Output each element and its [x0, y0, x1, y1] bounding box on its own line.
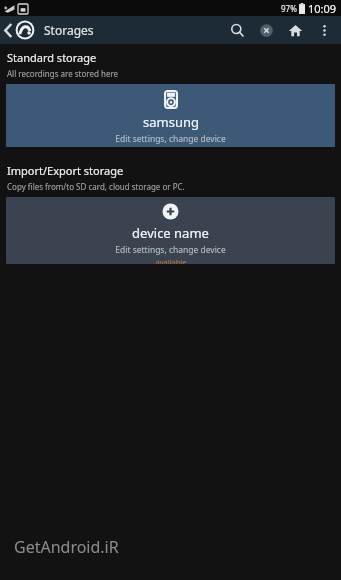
button[interactable]: Home: [281, 16, 310, 44]
staticText: samsung: [143, 113, 199, 131]
button[interactable]: Clear: [252, 16, 281, 44]
staticText: 97%: [281, 3, 297, 14]
staticText: Storages: [44, 22, 94, 38]
staticText: Edit settings, change device: [115, 133, 226, 145]
staticText: Standard storage: [7, 50, 97, 65]
staticText: All recordings are stored here: [7, 68, 119, 79]
staticText: 10:09: [308, 1, 337, 16]
button[interactable]: device name: [6, 197, 335, 264]
button[interactable]: Search: [223, 16, 252, 44]
staticText: GetAndroid.iR: [14, 536, 119, 558]
staticText: available: [155, 257, 187, 264]
staticText: Edit settings, change device: [115, 244, 226, 256]
staticText: device name: [132, 224, 209, 242]
staticText: Import/Export storage: [7, 163, 124, 178]
staticText: Copy files from/to SD card, cloud storag…: [7, 181, 185, 192]
button[interactable]: Navigate up: [0, 16, 38, 44]
button[interactable]: More options: [310, 16, 339, 44]
button[interactable]: samsung: [6, 84, 335, 147]
